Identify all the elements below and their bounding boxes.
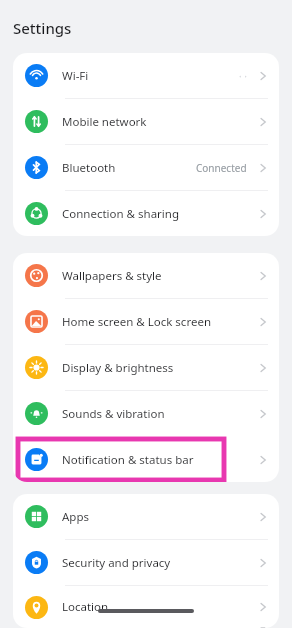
staticText: Wi-Fi [62, 68, 89, 84]
staticText: Location [62, 599, 109, 615]
button[interactable]: Bluetooth [13, 145, 279, 190]
button[interactable]: Wi-Fi [13, 53, 279, 98]
button[interactable]: Home screen & Lock screen [13, 299, 279, 344]
staticText: Apps [62, 509, 90, 525]
staticText: Connection & sharing [62, 206, 179, 222]
staticText: Display & brightness [62, 360, 174, 376]
button[interactable]: Connection & sharing [13, 191, 279, 236]
staticText: Settings [13, 18, 72, 38]
staticText: Security and privacy [62, 555, 171, 571]
staticText: Sounds & vibration [62, 406, 165, 422]
staticText: · · [239, 69, 247, 83]
button[interactable]: Sounds & vibration [13, 391, 279, 436]
staticText: Home screen & Lock screen [62, 314, 211, 330]
staticText: Wallpapers & style [62, 268, 162, 284]
staticText: Bluetooth [62, 160, 116, 176]
button[interactable]: Wallpapers & style [13, 253, 279, 298]
button[interactable]: Mobile network [13, 99, 279, 144]
button[interactable]: Location [13, 586, 279, 628]
button[interactable]: Apps [13, 494, 279, 539]
button[interactable]: Display & brightness [13, 345, 279, 390]
button[interactable]: Security and privacy [13, 540, 279, 585]
button[interactable]: Notification & status bar [13, 437, 279, 482]
staticText: Connected [196, 161, 247, 175]
staticText: Mobile network [62, 114, 147, 130]
staticText: Notification & status bar [62, 452, 194, 468]
